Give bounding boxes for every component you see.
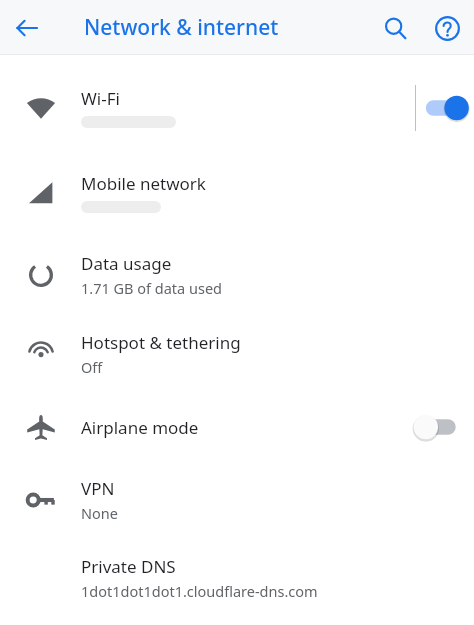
button[interactable]: Search xyxy=(370,3,420,53)
button[interactable]: Wi-Fi toggle xyxy=(416,95,474,121)
staticText: Network & internet xyxy=(84,13,279,42)
button[interactable]: Help xyxy=(420,1,474,55)
staticText: Hotspot & tethering xyxy=(81,331,241,354)
button[interactable]: Airplane mode toggle xyxy=(400,402,474,452)
button[interactable]: Mobile network xyxy=(0,150,474,235)
staticText: Airplane mode xyxy=(81,416,199,439)
button[interactable]: Back xyxy=(0,1,54,55)
staticText: 1.71 GB of data used xyxy=(81,278,223,298)
button[interactable]: Hotspot & tethering xyxy=(0,315,474,393)
staticText: Data usage xyxy=(81,252,172,275)
staticText: None xyxy=(81,503,118,523)
button[interactable]: Wi-Fi xyxy=(0,65,474,150)
staticText: VPN xyxy=(81,477,115,500)
staticText: Mobile network xyxy=(81,172,206,195)
button[interactable]: VPN xyxy=(0,461,474,539)
staticText: 1dot1dot1dot1.cloudflare-dns.com xyxy=(81,581,318,601)
button[interactable]: Private DNS xyxy=(0,539,474,617)
button[interactable]: Data usage xyxy=(0,235,474,315)
button[interactable]: Network & internet xyxy=(54,0,370,55)
staticText: Private DNS xyxy=(81,555,176,578)
staticText: Off xyxy=(81,357,103,377)
staticText: Wi-Fi xyxy=(81,87,120,110)
button[interactable]: Airplane mode xyxy=(0,393,474,461)
